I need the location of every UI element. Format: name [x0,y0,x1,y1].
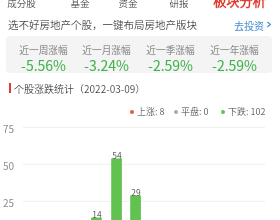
button[interactable]: 基金 [45,0,115,13]
button[interactable]: 研报 [144,0,214,13]
button[interactable]: 平盘: 0 [174,105,209,118]
button[interactable]: 近一月涨幅 [75,36,138,73]
button[interactable]: 近一年涨幅 [202,36,266,73]
button[interactable]: 成分股 [0,0,56,13]
staticText: 29 [131,186,141,198]
staticText: -2.59% [148,55,193,71]
staticText: 成分股 [7,0,36,10]
staticText: 上涨: 8 [137,105,165,118]
staticText: 54 [112,149,122,161]
button[interactable]: 板块分析 [204,0,274,10]
staticText: 近一周涨幅 [19,43,68,57]
button[interactable]: 近一季涨幅 [138,36,202,73]
staticText: 选不好房地产个股，一键布局房地产版块 [8,17,197,32]
staticText: 近一年涨幅 [210,43,259,57]
button[interactable]: 下跌: 102 [221,105,266,118]
staticText: 资金 [118,0,138,10]
staticText: 去投资 [234,18,264,32]
staticText: 基金 [70,0,90,10]
staticText: 50 [3,158,15,172]
button[interactable]: 上涨: 8 [130,105,165,118]
staticText: 研报 [169,0,189,10]
button[interactable]: 个股涨跌统计（2022-03-09） [9,81,146,95]
staticText: 板块分析 [213,0,266,10]
staticText: -2.59% [212,55,257,71]
staticText: 75 [3,121,15,135]
staticText: 近一月涨幅 [82,43,131,57]
staticText: 近一季涨幅 [146,43,195,57]
staticText: 下跌: 102 [228,105,266,118]
staticText: -3.24% [84,55,129,71]
staticText: 25 [3,195,15,209]
button[interactable]: 近一周涨幅 [12,36,75,73]
button[interactable]: 选不好房地产个股，一键布局房地产版块 [0,17,280,32]
button[interactable]: 资金 [93,0,163,13]
staticText: 平盘: 0 [181,105,209,118]
staticText: 14 [92,208,102,220]
staticText: -5.56% [21,55,66,71]
staticText: 个股涨跌统计（2022-03-09） [14,81,146,95]
